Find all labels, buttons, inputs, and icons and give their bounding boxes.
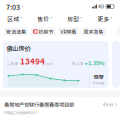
button[interactable]: 善居地产世联行善居春周项目部 xyxy=(0,97,120,117)
staticText: 较上月 xyxy=(72,61,84,66)
staticText: 房型 xyxy=(67,15,79,23)
staticText: VR带看 xyxy=(61,28,77,35)
button[interactable]: 房型 xyxy=(60,13,90,25)
staticText: 更多 xyxy=(97,15,109,23)
staticText: 区域 xyxy=(7,15,19,23)
staticText: 40 xyxy=(98,3,104,10)
button[interactable]: 惠 xyxy=(31,27,56,36)
staticText: 观望 xyxy=(93,73,103,80)
button[interactable]: 更多 xyxy=(90,13,120,25)
staticText: 善居地产世联行善居春周项目部 xyxy=(4,100,74,108)
button[interactable]: VR带看 xyxy=(58,27,79,36)
staticText: 13494 xyxy=(20,55,45,67)
staticText: 佛山房价 xyxy=(6,44,30,52)
staticText: 惠 xyxy=(34,29,37,34)
staticText: 市场情绪 xyxy=(92,81,104,85)
staticText: 1.35% xyxy=(88,58,105,67)
staticText: 抗房节 xyxy=(39,28,54,35)
staticText: 安选选集 xyxy=(6,28,26,35)
staticText: 二手房 xyxy=(6,61,18,66)
button[interactable]: 周末急售 xyxy=(81,27,106,36)
button[interactable]: 售价 xyxy=(30,13,60,25)
staticText: 不错这工作过段好车10个 xyxy=(4,110,38,115)
staticText: 46分 xyxy=(103,101,114,108)
staticText: 售价 xyxy=(37,15,49,23)
button[interactable]: 佛山房价 xyxy=(3,41,108,88)
button[interactable]: 安选选集 xyxy=(4,27,28,36)
staticText: 元/m² xyxy=(45,62,53,66)
staticText: 7:03 xyxy=(6,1,20,12)
staticText: ◂ xyxy=(21,5,23,8)
staticText: 周末急售 xyxy=(84,28,104,35)
button[interactable]: 区域 xyxy=(0,13,30,25)
